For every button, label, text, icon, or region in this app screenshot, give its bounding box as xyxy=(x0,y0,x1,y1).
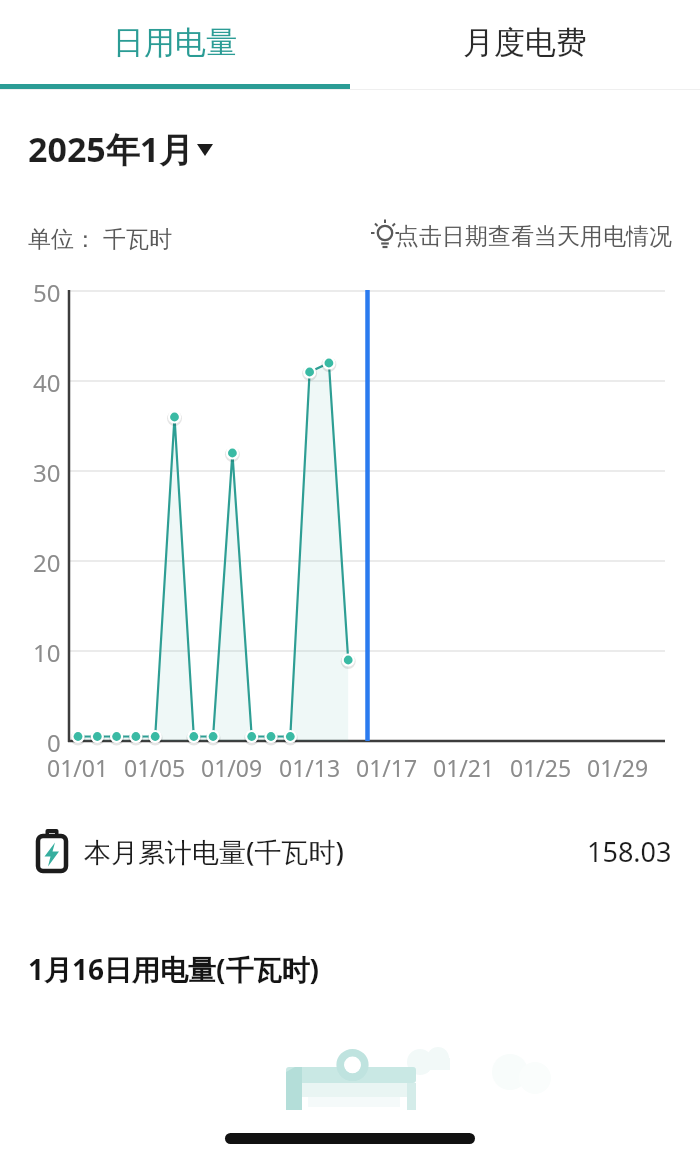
staticText: 01/05 xyxy=(124,752,186,780)
staticText: 40 xyxy=(33,366,61,396)
staticText: 点击日期查看当天用电情况 xyxy=(396,222,672,251)
staticText: 01/29 xyxy=(587,752,649,780)
staticText: 01/21 xyxy=(433,752,495,780)
staticText: 日用电量 xyxy=(113,23,237,62)
staticText: 2025年1月 xyxy=(28,126,194,170)
button[interactable]: 月度电费 xyxy=(350,0,700,84)
staticText: 10 xyxy=(33,636,61,666)
staticText: 01/25 xyxy=(510,752,572,780)
staticText: 月度电费 xyxy=(463,23,587,62)
staticText: 20 xyxy=(33,546,61,576)
staticText: 01/13 xyxy=(279,752,341,780)
button[interactable]: 2025年1月 xyxy=(28,126,194,170)
staticText: 单位： 千瓦时 xyxy=(28,222,172,253)
staticText: 1月16日用电量(千瓦时) xyxy=(28,950,320,988)
staticText: 158.03 xyxy=(587,833,672,870)
button[interactable]: 日用电量 xyxy=(0,0,350,84)
button[interactable]: 本月累计电量(千瓦时) xyxy=(0,826,700,876)
staticText: 本月累计电量(千瓦时) xyxy=(84,833,344,870)
staticText: 30 xyxy=(33,456,61,486)
staticText: 0 xyxy=(47,726,61,756)
staticText: 01/17 xyxy=(356,752,418,780)
staticText: 50 xyxy=(33,276,61,306)
staticText: 01/01 xyxy=(47,752,109,780)
staticText: 01/09 xyxy=(201,752,263,780)
